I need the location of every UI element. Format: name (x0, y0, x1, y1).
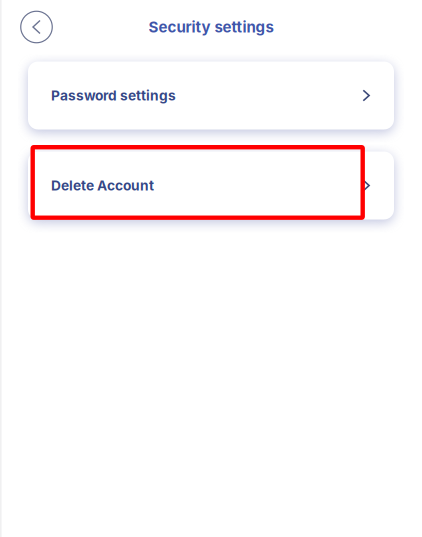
button[interactable]: Back (14, 5, 58, 49)
staticText: Delete Account (51, 177, 154, 194)
staticText: Security settings (148, 18, 273, 36)
button[interactable]: Password settings (28, 61, 394, 129)
button[interactable]: Delete Account (28, 151, 394, 219)
staticText: Password settings (51, 87, 176, 104)
